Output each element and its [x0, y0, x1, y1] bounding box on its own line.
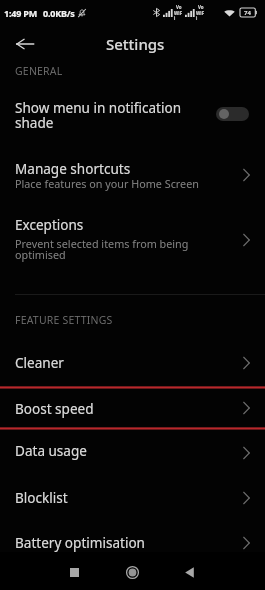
- staticText: Data usage: [15, 442, 225, 460]
- button[interactable]: Blocklist: [0, 475, 265, 520]
- staticText: Boost speed: [15, 400, 225, 418]
- button[interactable]: Back: [171, 554, 207, 590]
- button[interactable]: Back: [6, 25, 43, 62]
- button[interactable]: Show menu in notification shade: [0, 86, 265, 144]
- staticText: Vo: [176, 4, 182, 10]
- staticText: GENERAL: [15, 64, 63, 78]
- staticText: Exceptions: [15, 216, 225, 234]
- staticText: FEATURE SETTINGS: [15, 313, 113, 327]
- staticText: Battery optimisation: [15, 534, 225, 552]
- staticText: 1:49 PM: [4, 7, 37, 19]
- staticText: Blocklist: [15, 489, 225, 507]
- staticText: Place features on your Home Screen: [15, 176, 215, 191]
- staticText: WiFi: [196, 10, 205, 21]
- staticText: Show menu in notification shade: [15, 99, 215, 132]
- staticText: Manage shortcuts: [15, 160, 225, 178]
- button[interactable]: Exceptions: [0, 208, 265, 272]
- staticText: Vo: [198, 4, 204, 10]
- button[interactable]: Home: [114, 554, 150, 590]
- staticText: 0.0KB/s: [43, 7, 75, 19]
- button[interactable]: Battery optimisation: [0, 520, 265, 565]
- staticText: Prevent selected items from being optimi…: [15, 236, 215, 262]
- button[interactable]: Recent apps: [56, 554, 92, 590]
- button[interactable]: Cleaner: [0, 340, 265, 385]
- staticText: Settings: [106, 34, 165, 54]
- staticText: 74: [244, 9, 251, 17]
- button[interactable]: Data usage: [0, 430, 265, 475]
- button[interactable]: Boost speed: [0, 386, 265, 430]
- staticText: Cleaner: [15, 354, 225, 372]
- button[interactable]: Manage shortcuts: [0, 150, 265, 200]
- staticText: WiFi: [174, 10, 183, 21]
